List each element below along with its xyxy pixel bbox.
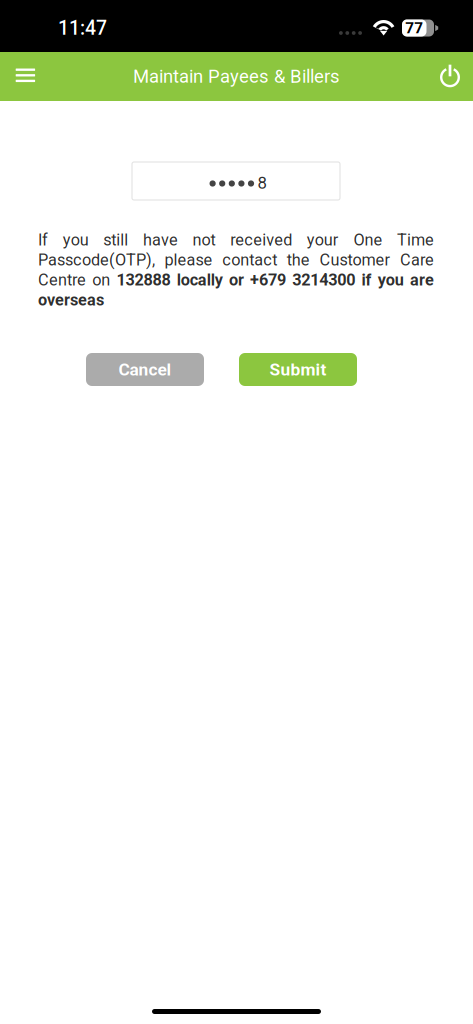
staticText: Time [397, 230, 434, 250]
staticText: received [230, 230, 292, 250]
staticText: 3214300 [292, 270, 355, 290]
button[interactable]: One Time Passcode [132, 162, 340, 200]
button[interactable]: Menu [0, 52, 51, 101]
staticText: have [143, 230, 178, 250]
staticText: 132888 [116, 270, 170, 290]
staticText: Maintain Payees & Billers [133, 66, 340, 87]
staticText: Submit [269, 359, 326, 380]
staticText: 11:47 [58, 17, 107, 39]
staticText: please [165, 250, 213, 270]
staticText: your [307, 230, 339, 250]
staticText: the [287, 250, 310, 270]
staticText: One [353, 230, 382, 250]
staticText: or [229, 270, 244, 290]
staticText: Centre [38, 270, 86, 290]
staticText: Customer [319, 250, 390, 270]
staticText: if [362, 270, 372, 290]
button[interactable]: Submit [239, 353, 357, 386]
staticText: you [378, 270, 404, 290]
staticText: If [38, 230, 48, 250]
staticText: on [92, 270, 110, 290]
staticText: overseas [38, 290, 104, 310]
button[interactable]: Log out [427, 52, 473, 101]
staticText: locally [177, 270, 223, 290]
staticText: 8 [257, 173, 266, 193]
staticText: +679 [250, 270, 286, 290]
staticText: Passcode(OTP), [38, 250, 155, 270]
staticText: you [63, 230, 89, 250]
staticText: Cancel [118, 359, 171, 380]
staticText: Care [400, 250, 434, 270]
staticText: still [103, 230, 128, 250]
button[interactable]: Cancel [86, 353, 204, 386]
staticText: not [192, 230, 215, 250]
staticText: 77 [405, 19, 423, 37]
staticText: are [410, 270, 434, 290]
staticText: contact [222, 250, 277, 270]
